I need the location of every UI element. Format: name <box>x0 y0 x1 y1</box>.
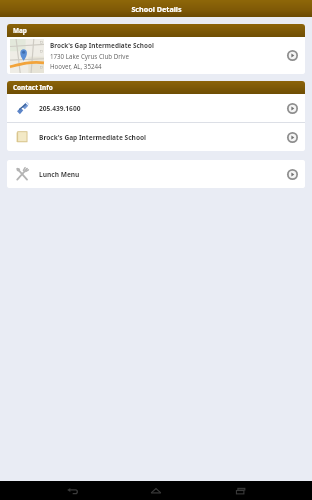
staticText: 1730 Lake Cyrus Club Drive <box>50 52 129 60</box>
staticText: Contact Info <box>13 83 53 92</box>
button[interactable]: Recent apps <box>228 481 254 500</box>
staticText: School Details <box>131 4 182 14</box>
button[interactable]: Lunch Menu <box>7 160 305 188</box>
staticText: Brock's Gap Intermediate School <box>39 133 147 142</box>
staticText: Lunch Menu <box>39 170 80 179</box>
button[interactable]: Back <box>59 481 85 500</box>
button[interactable]: Brock's Gap Intermediate School <box>7 37 305 74</box>
button[interactable]: Home <box>143 481 169 500</box>
staticText: Hoover, AL, 35244 <box>50 62 102 70</box>
other: Open <box>287 169 298 180</box>
other: Open <box>287 50 298 61</box>
button[interactable]: Brock's Gap Intermediate School <box>7 123 305 151</box>
other: Open <box>287 103 298 114</box>
other: Open <box>287 132 298 143</box>
staticText: 205.439.1600 <box>39 104 81 113</box>
button[interactable]: 205.439.1600 <box>7 94 305 122</box>
staticText: Map <box>13 26 27 35</box>
staticText: Brock's Gap Intermediate School <box>50 41 154 50</box>
